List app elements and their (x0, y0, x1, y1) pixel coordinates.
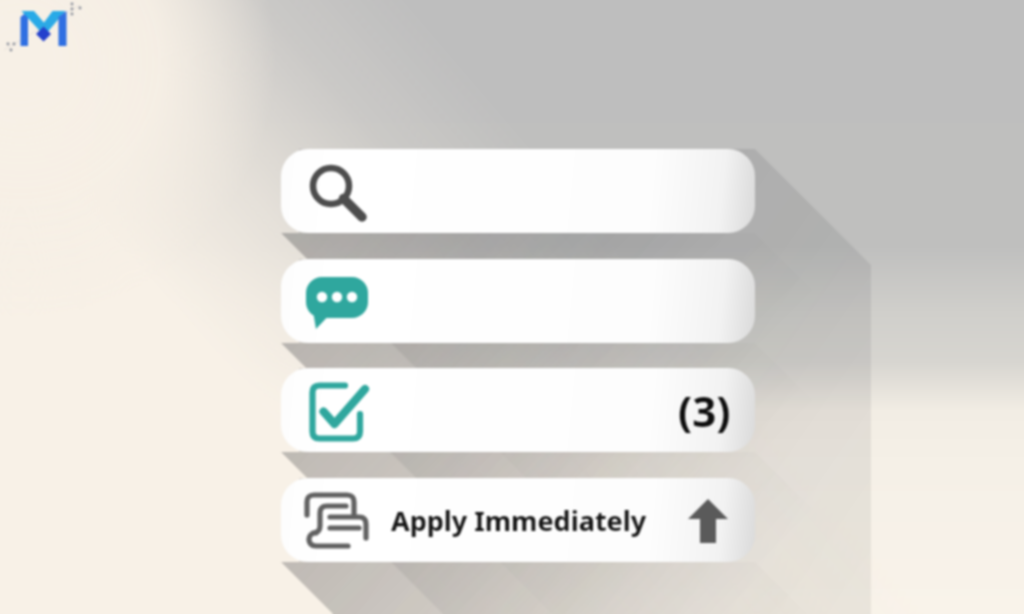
other: Documents (281, 478, 755, 562)
other: Tasks (281, 368, 755, 452)
other: Brand logo (0, 0, 110, 70)
button[interactable]: Tasks (281, 368, 755, 452)
button[interactable]: Messages (281, 259, 755, 343)
staticText: (3) (678, 382, 731, 439)
staticText: Apply Immediately (391, 502, 647, 539)
button[interactable]: Documents (281, 478, 755, 562)
other: Submit (687, 498, 729, 544)
button[interactable]: Search (281, 149, 755, 233)
